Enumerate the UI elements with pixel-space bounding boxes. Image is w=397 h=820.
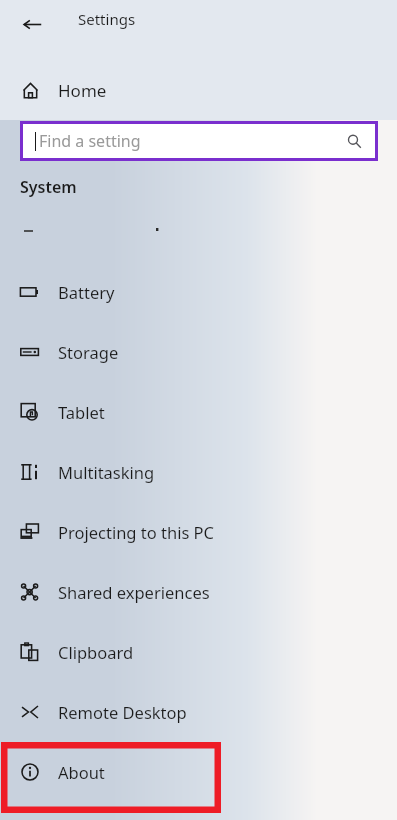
button[interactable]: Shared experiences xyxy=(0,562,397,622)
button[interactable]: About xyxy=(0,742,397,802)
staticText: Shared experiences xyxy=(58,581,210,603)
button[interactable]: Battery xyxy=(0,262,397,322)
staticText: Find a setting xyxy=(39,130,141,152)
staticText: Clipboard xyxy=(58,641,134,663)
staticText: About xyxy=(58,761,105,783)
button[interactable]: Multitasking xyxy=(0,442,397,502)
button[interactable]: Clipboard xyxy=(0,622,397,682)
staticText: Battery xyxy=(58,281,115,303)
staticText: Multitasking xyxy=(58,461,155,483)
staticText: Projecting to this PC xyxy=(58,521,215,543)
staticText: Settings xyxy=(78,9,136,29)
staticText: Home xyxy=(58,79,107,102)
button[interactable]: Projecting to this PC xyxy=(0,502,397,562)
staticText: Tablet xyxy=(58,401,105,423)
button[interactable]: Remote Desktop xyxy=(0,682,397,742)
button[interactable]: Home xyxy=(0,62,397,118)
button[interactable]: Tablet xyxy=(0,382,397,442)
staticText: System xyxy=(20,176,77,198)
staticText: Remote Desktop xyxy=(58,701,187,723)
staticText: Storage xyxy=(58,341,119,363)
button[interactable]: Find a setting xyxy=(23,124,375,158)
button[interactable]: Back xyxy=(14,6,50,42)
button[interactable]: Storage xyxy=(0,322,397,382)
